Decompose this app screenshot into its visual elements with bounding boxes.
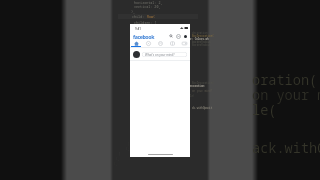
staticText: BorderRadius bbox=[192, 43, 211, 47]
button[interactable]: Messenger bbox=[176, 34, 181, 39]
staticText: on your mi bbox=[252, 85, 320, 104]
button[interactable]: Marketplace bbox=[154, 40, 166, 47]
staticText: 9:41 bbox=[135, 27, 141, 31]
button[interactable]: Your profile photo bbox=[133, 51, 140, 58]
button[interactable]: Reels bbox=[142, 40, 154, 47]
staticText: BoxDecoration( bbox=[192, 81, 214, 85]
staticText: horizontal: 2, bbox=[134, 0, 163, 5]
staticText: r: Colors.wh bbox=[190, 37, 209, 41]
staticText: vertical: 20, bbox=[134, 4, 161, 9]
staticText: facebook bbox=[133, 33, 155, 40]
staticText: What's on your mind? bbox=[145, 53, 175, 57]
button[interactable]: What's on your mind? bbox=[142, 52, 187, 57]
staticText: le( bbox=[252, 100, 277, 119]
staticText: children: [ bbox=[134, 20, 157, 25]
staticText: ecoration: bbox=[190, 84, 206, 88]
button[interactable]: Home bbox=[130, 40, 142, 47]
staticText: child: bbox=[132, 14, 147, 19]
staticText: on your mind? bbox=[192, 89, 213, 93]
button[interactable]: Menu bbox=[178, 40, 190, 47]
button[interactable]: Profile bbox=[184, 35, 187, 38]
staticText: le( bbox=[190, 94, 195, 98]
staticText: ), bbox=[131, 9, 136, 14]
button[interactable]: Notifications bbox=[166, 40, 178, 47]
staticText: borderRadius bbox=[192, 40, 211, 44]
staticText: ck.withOpacit bbox=[192, 106, 213, 110]
staticText: decoration: bbox=[192, 31, 210, 35]
staticText: BoxDecoration( bbox=[192, 34, 214, 38]
button[interactable]: Search bbox=[169, 34, 173, 38]
staticText: ack.withOp bbox=[252, 138, 320, 157]
staticText: oration( bbox=[252, 70, 318, 89]
staticText: Row( bbox=[147, 14, 156, 19]
